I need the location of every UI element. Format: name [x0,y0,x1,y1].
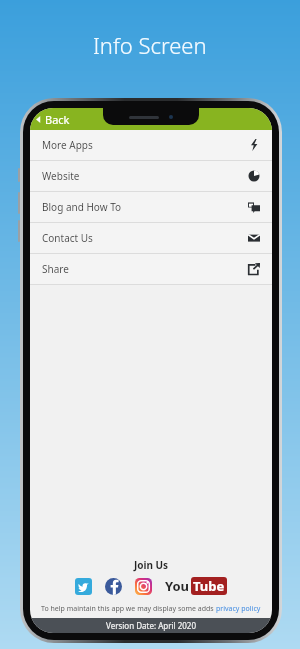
button[interactable]: Blog and How To [30,192,272,222]
staticText: Info Screen [93,30,207,60]
button[interactable]: Instagram [135,578,152,595]
staticText: Join Us [30,558,272,572]
staticText: Back [45,112,70,127]
button[interactable]: More Apps [30,130,272,160]
staticText: Share [42,262,69,276]
button[interactable]: Back [30,109,78,130]
button[interactable]: Website [30,161,272,191]
button[interactable]: Facebook [105,578,122,595]
staticText: You [165,577,190,595]
staticText: Website [42,169,80,183]
button[interactable]: Twitter [75,578,92,595]
staticText: To help maintain this app we may display… [41,604,216,614]
button[interactable]: Contact Us [30,223,272,253]
button[interactable]: Share [30,254,272,284]
button[interactable]: YouTube [165,577,227,595]
button[interactable]: privacy policy [216,604,261,614]
staticText: privacy policy [216,604,261,614]
staticText: More Apps [42,138,93,152]
staticText: Contact Us [42,231,93,245]
staticText: Version Date: April 2020 [106,620,197,631]
staticText: Blog and How To [42,200,122,214]
staticText: Tube [193,577,225,595]
